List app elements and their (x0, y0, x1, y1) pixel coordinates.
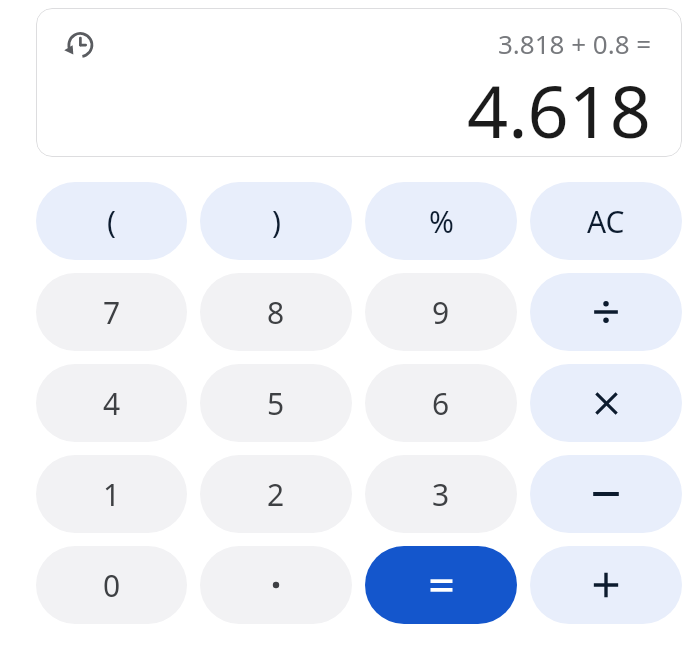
button[interactable]: 7 (36, 273, 187, 351)
button[interactable]: Equals (365, 546, 517, 624)
button[interactable]: 5 (200, 364, 352, 442)
staticText: ( (107, 201, 116, 242)
button[interactable]: 6 (365, 364, 517, 442)
button[interactable]: AC (530, 182, 682, 260)
staticText: 5 (267, 383, 285, 424)
button[interactable]: % (365, 182, 517, 260)
button[interactable]: 2 (200, 455, 352, 533)
button[interactable]: 1 (36, 455, 187, 533)
staticText: AC (587, 201, 625, 242)
button[interactable]: ( (36, 182, 187, 260)
button[interactable]: Decimal point (200, 546, 352, 624)
button[interactable]: 0 (36, 546, 187, 624)
staticText: 3 (432, 474, 450, 515)
button[interactable]: 9 (365, 273, 517, 351)
staticText: 7 (103, 292, 121, 333)
button[interactable]: Add (530, 546, 682, 624)
staticText: 6 (432, 383, 450, 424)
staticText: 4 (103, 383, 121, 424)
staticText: 2 (267, 474, 285, 515)
button[interactable]: 3 (365, 455, 517, 533)
staticText: 1 (103, 474, 121, 515)
staticText: 8 (267, 292, 285, 333)
button[interactable]: 4 (36, 364, 187, 442)
staticText: % (429, 201, 454, 242)
staticText: ) (272, 201, 281, 242)
staticText: 4.618 (467, 61, 652, 157)
button[interactable]: 8 (200, 273, 352, 351)
button[interactable]: Multiply (530, 364, 682, 442)
button[interactable]: ) (200, 182, 352, 260)
staticText: 9 (432, 292, 450, 333)
button[interactable]: Subtract (530, 455, 682, 533)
staticText: 0 (103, 565, 121, 606)
button[interactable]: Divide (530, 273, 682, 351)
button[interactable]: History (56, 22, 100, 66)
staticText: 3.818 + 0.8 = (498, 26, 652, 61)
